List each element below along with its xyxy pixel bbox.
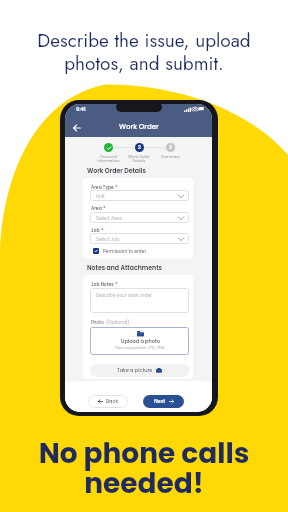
staticText: * (100, 227, 104, 233)
button[interactable]: Back (70, 121, 84, 135)
staticText: Permission to enter (103, 248, 147, 254)
staticText: Work Order Details (87, 166, 146, 175)
staticText: Back (106, 398, 119, 405)
staticText: Summary (161, 154, 180, 159)
button[interactable]: Permission to enter (93, 248, 147, 254)
staticText: 9:41 (76, 106, 86, 113)
staticText: Files supported: JPG, PNG (115, 345, 165, 351)
staticText: Describe your work order (96, 292, 152, 298)
staticText: Area (91, 205, 102, 211)
staticText: Next (154, 398, 166, 405)
staticText: Describe the issue, upload photos, and s… (0, 27, 288, 77)
staticText: Work Order (119, 122, 159, 132)
staticText: Notes and Attachments (87, 263, 162, 272)
button[interactable]: Next (143, 395, 184, 408)
staticText: Job Notes (91, 281, 114, 287)
staticText: * (114, 184, 118, 190)
button[interactable]: Select Job (90, 233, 189, 244)
staticText: 2 (138, 144, 141, 151)
staticText: 3 (169, 144, 172, 151)
staticText: * (114, 281, 118, 287)
button[interactable]: Take a picture (90, 364, 189, 377)
staticText: Upload a photo (121, 338, 160, 345)
staticText: Area Type (91, 184, 114, 190)
staticText: Take a picture (117, 367, 153, 374)
button[interactable]: Back (88, 395, 128, 408)
staticText: Select Area (96, 215, 122, 221)
staticText: (Optional) (106, 319, 130, 325)
button[interactable]: Upload a photo (90, 327, 189, 355)
staticText: Job (91, 227, 100, 233)
staticText: Unit (96, 193, 105, 199)
button[interactable]: Unit (90, 190, 189, 201)
staticText: Personal Information (97, 154, 120, 164)
staticText: Select Job (96, 236, 120, 242)
staticText: Work Order Details (128, 154, 150, 164)
button[interactable]: Select Area (90, 212, 189, 223)
staticText: Photo (91, 319, 106, 325)
staticText: No phone calls needed! (0, 434, 288, 503)
staticText: * (102, 205, 106, 211)
